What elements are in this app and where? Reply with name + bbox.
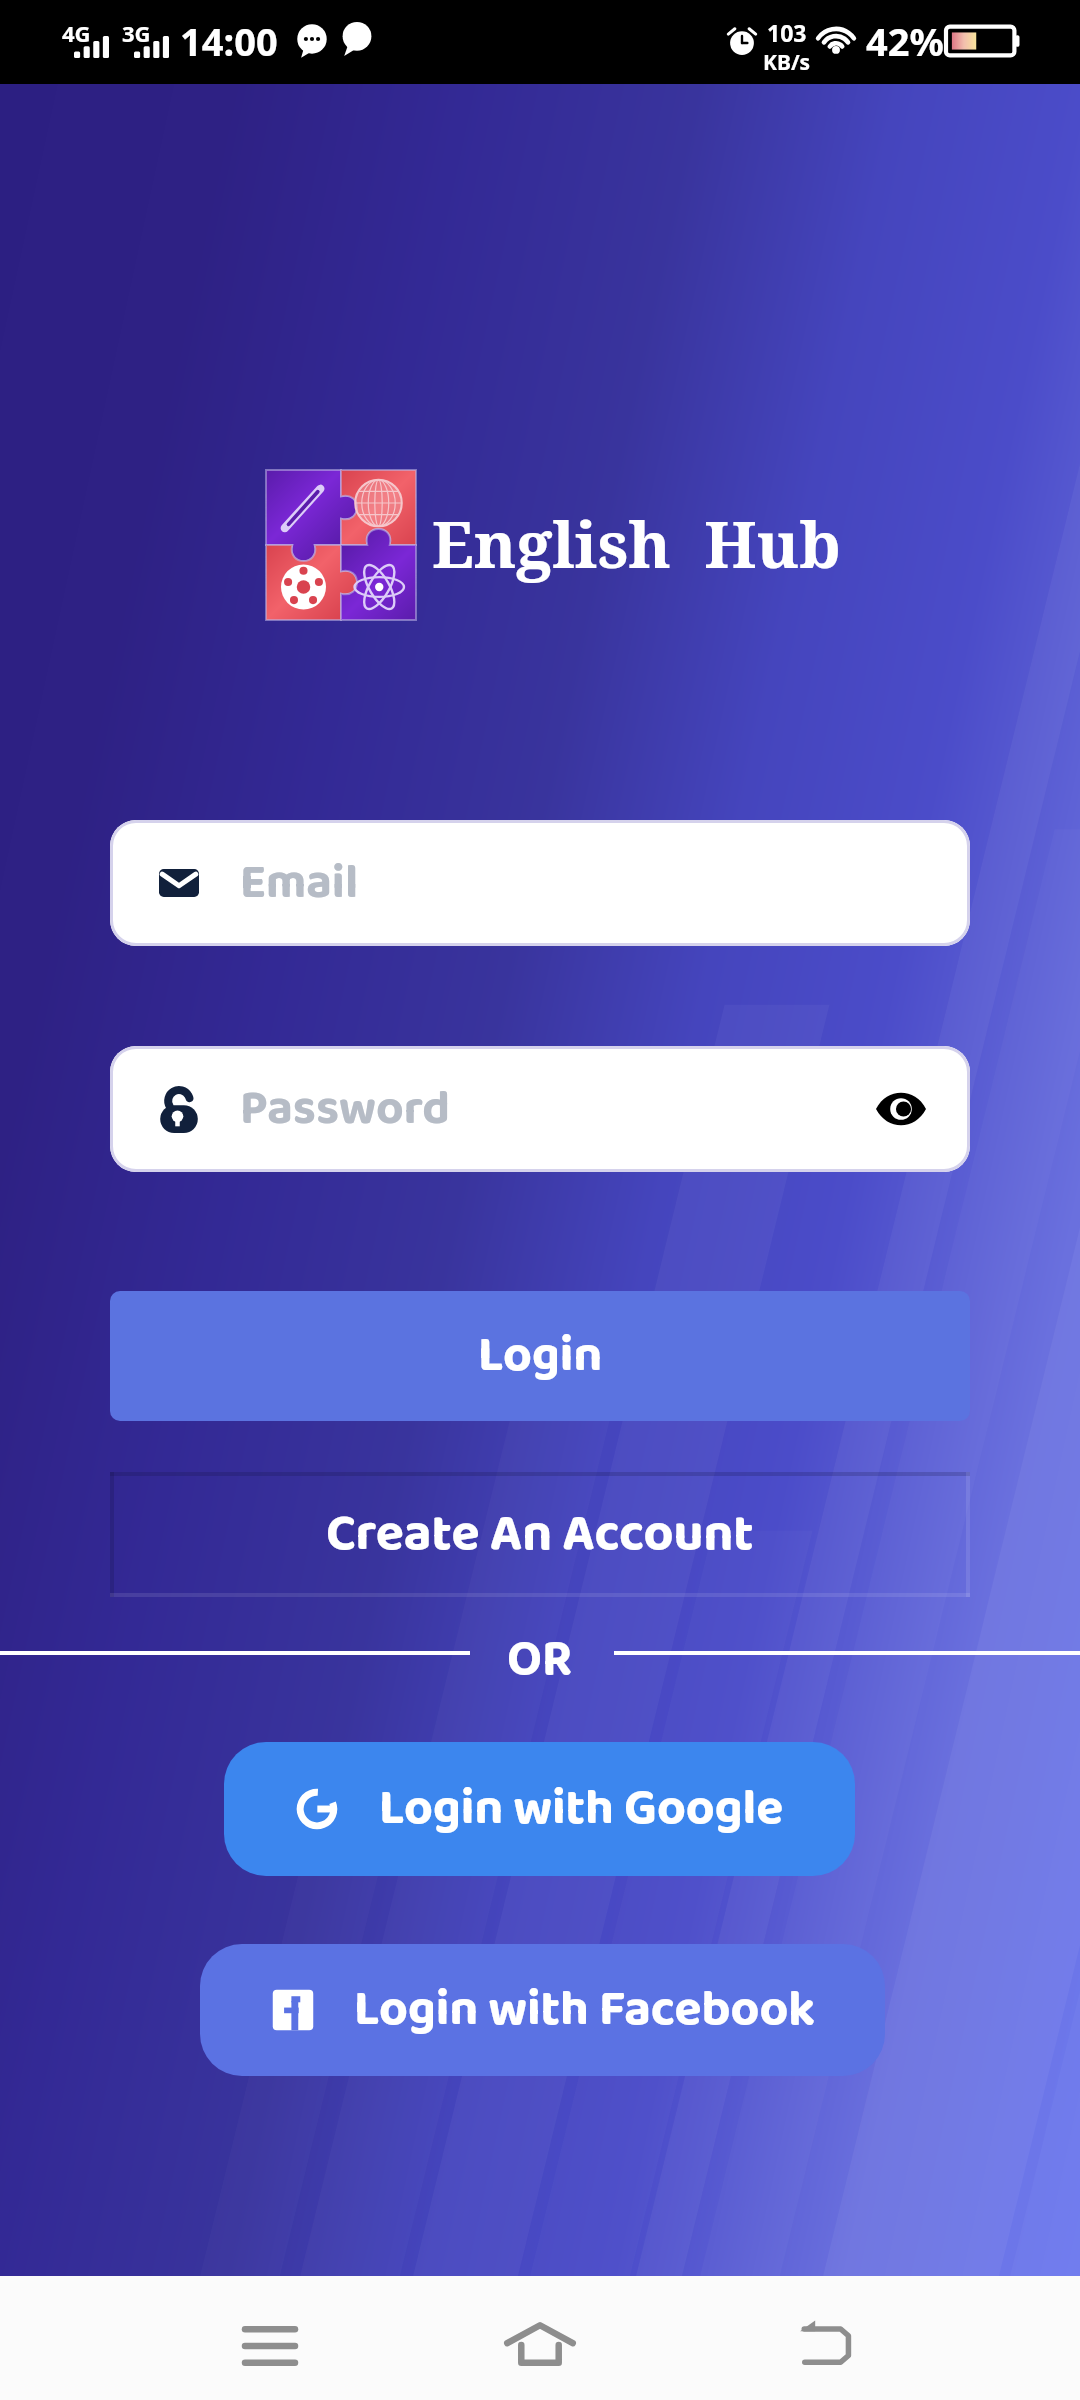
staticText: Login with Google [379, 1769, 784, 1849]
staticText: 14:00 [180, 15, 278, 67]
button[interactable]: Show password [870, 1078, 932, 1140]
staticText: Email [240, 845, 359, 922]
staticText: OR [507, 1620, 573, 1700]
staticText: Create An Account [326, 1493, 754, 1576]
staticText: Login with Facebook [354, 1970, 816, 2050]
button[interactable]: Password [110, 1046, 970, 1172]
staticText: 103 [767, 17, 807, 48]
staticText: 42% [866, 15, 944, 67]
staticText: 3G [122, 18, 151, 48]
button[interactable]: Recent apps [208, 2284, 332, 2400]
staticText: English Hub [432, 500, 841, 587]
staticText: KB/s [763, 48, 811, 77]
staticText: Login [478, 1316, 603, 1396]
staticText: Password [240, 1071, 450, 1148]
button[interactable]: Home [478, 2282, 602, 2400]
button[interactable]: Back [762, 2283, 886, 2400]
button[interactable]: Login with Google [224, 1742, 855, 1876]
button[interactable]: Login with Facebook [200, 1944, 885, 2076]
button[interactable]: Login [110, 1291, 970, 1421]
button[interactable]: Email [110, 820, 970, 946]
staticText: 4G [62, 18, 91, 48]
button[interactable]: Create An Account [110, 1472, 970, 1597]
